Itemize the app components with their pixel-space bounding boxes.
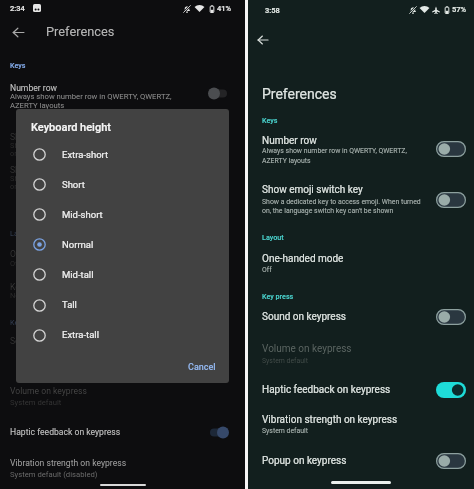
staticText: Show number pad <box>10 165 80 175</box>
staticText: Normal <box>62 239 94 250</box>
staticText: Haptic feedback on keypress <box>10 427 121 437</box>
staticText: Keys <box>262 116 278 124</box>
staticText: System default <box>262 357 308 365</box>
staticText: Off <box>10 259 21 268</box>
staticText: Volume on keypress <box>10 386 87 396</box>
staticText: Show emoji switch key <box>262 184 363 196</box>
staticText: Keyboard height <box>10 282 72 292</box>
staticText: System default <box>262 427 308 435</box>
staticText: Always show number row in QWERTY, QWERTZ… <box>262 147 407 155</box>
button[interactable] <box>16 230 229 260</box>
staticText: Keyboard height <box>31 121 111 134</box>
staticText: Number row <box>10 83 58 93</box>
staticText: Layout <box>262 233 284 241</box>
staticText: Volume on keypress <box>262 343 352 355</box>
staticText: Extra-tall <box>62 329 99 340</box>
staticText: Mid-tall <box>62 269 94 280</box>
staticText: System default <box>10 398 62 407</box>
staticText: 57% <box>452 5 467 14</box>
staticText: Short <box>62 179 85 190</box>
button[interactable] <box>16 140 229 170</box>
staticText: Show a dedicated key to access emoji. Wh… <box>10 141 181 150</box>
staticText: Tall <box>62 299 77 310</box>
staticText: Vibration strength on keypress <box>10 458 127 468</box>
staticText: Sound on keypress <box>262 311 346 323</box>
staticText: Mid-short <box>62 209 103 220</box>
staticText: Sound on keypress <box>10 336 83 346</box>
staticText: Off <box>262 266 272 274</box>
staticText: Popup on keypress <box>262 455 347 467</box>
staticText: Number row <box>262 135 317 147</box>
staticText: on, the language switch key can't be sho… <box>262 207 394 215</box>
staticText: Show emoji switch key <box>10 132 97 142</box>
staticText: Key press <box>262 292 294 300</box>
staticText: Haptic feedback on keypress <box>262 384 391 396</box>
staticText: Keys <box>10 61 26 69</box>
button[interactable] <box>16 290 229 320</box>
staticText: Vibration strength on keypress <box>262 414 398 426</box>
button[interactable] <box>436 453 466 469</box>
button[interactable]: Navigate up <box>7 21 29 43</box>
button[interactable]: Navigate up <box>251 28 275 52</box>
staticText: 2:34 <box>10 4 25 13</box>
staticText: Show a dedicated number pad key. When tu… <box>10 174 168 183</box>
staticText: System default (disabled) <box>10 470 98 479</box>
staticText: Cancel <box>188 362 216 373</box>
button[interactable] <box>16 170 229 200</box>
staticText: 41% <box>217 4 232 13</box>
button[interactable] <box>16 320 229 350</box>
button[interactable] <box>436 141 466 157</box>
staticText: Always show number row in QWERTY, QWERTZ… <box>10 92 172 101</box>
staticText: One-handed mode <box>10 249 80 259</box>
button[interactable] <box>436 192 466 208</box>
button[interactable] <box>208 426 229 439</box>
staticText: on, the language switch key can't be sho… <box>10 149 151 158</box>
button[interactable] <box>208 87 229 100</box>
button[interactable] <box>436 309 466 325</box>
staticText: One-handed mode <box>262 253 344 265</box>
staticText: Show a dedicated key to access emoji. Wh… <box>262 198 421 206</box>
button[interactable]: Cancel <box>182 357 222 378</box>
button[interactable] <box>16 260 229 290</box>
staticText: Preferences <box>262 86 337 102</box>
staticText: Normal <box>10 291 35 300</box>
staticText: Preferences <box>46 24 115 39</box>
staticText: Key press <box>10 318 42 326</box>
staticText: Layout <box>10 229 32 237</box>
button[interactable] <box>436 382 466 398</box>
staticText: Extra-short <box>62 149 109 160</box>
button[interactable] <box>16 200 229 230</box>
staticText: on, the language switch key can't be sho… <box>10 182 151 191</box>
staticText: 3:58 <box>265 6 280 15</box>
staticText: AZERTY layouts <box>10 101 65 110</box>
staticText: AZERTY layouts <box>262 157 311 165</box>
